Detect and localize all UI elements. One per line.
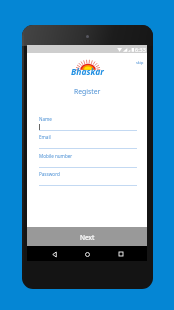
staticText: Register bbox=[74, 87, 101, 96]
button[interactable]: Next bbox=[27, 227, 147, 248]
staticText: Email bbox=[39, 134, 51, 140]
staticText: Next bbox=[80, 233, 95, 242]
button[interactable]: Home bbox=[80, 247, 94, 261]
staticText: Bhaskar bbox=[71, 66, 104, 78]
staticText: Password bbox=[39, 171, 60, 177]
button[interactable]: skip bbox=[136, 60, 144, 65]
staticText: 6:33 bbox=[135, 46, 146, 53]
staticText: skip bbox=[136, 60, 144, 65]
button[interactable]: Recents bbox=[114, 247, 128, 261]
staticText: Mobile number bbox=[39, 153, 73, 159]
staticText: Name bbox=[39, 116, 52, 122]
button[interactable]: Back bbox=[47, 247, 61, 261]
